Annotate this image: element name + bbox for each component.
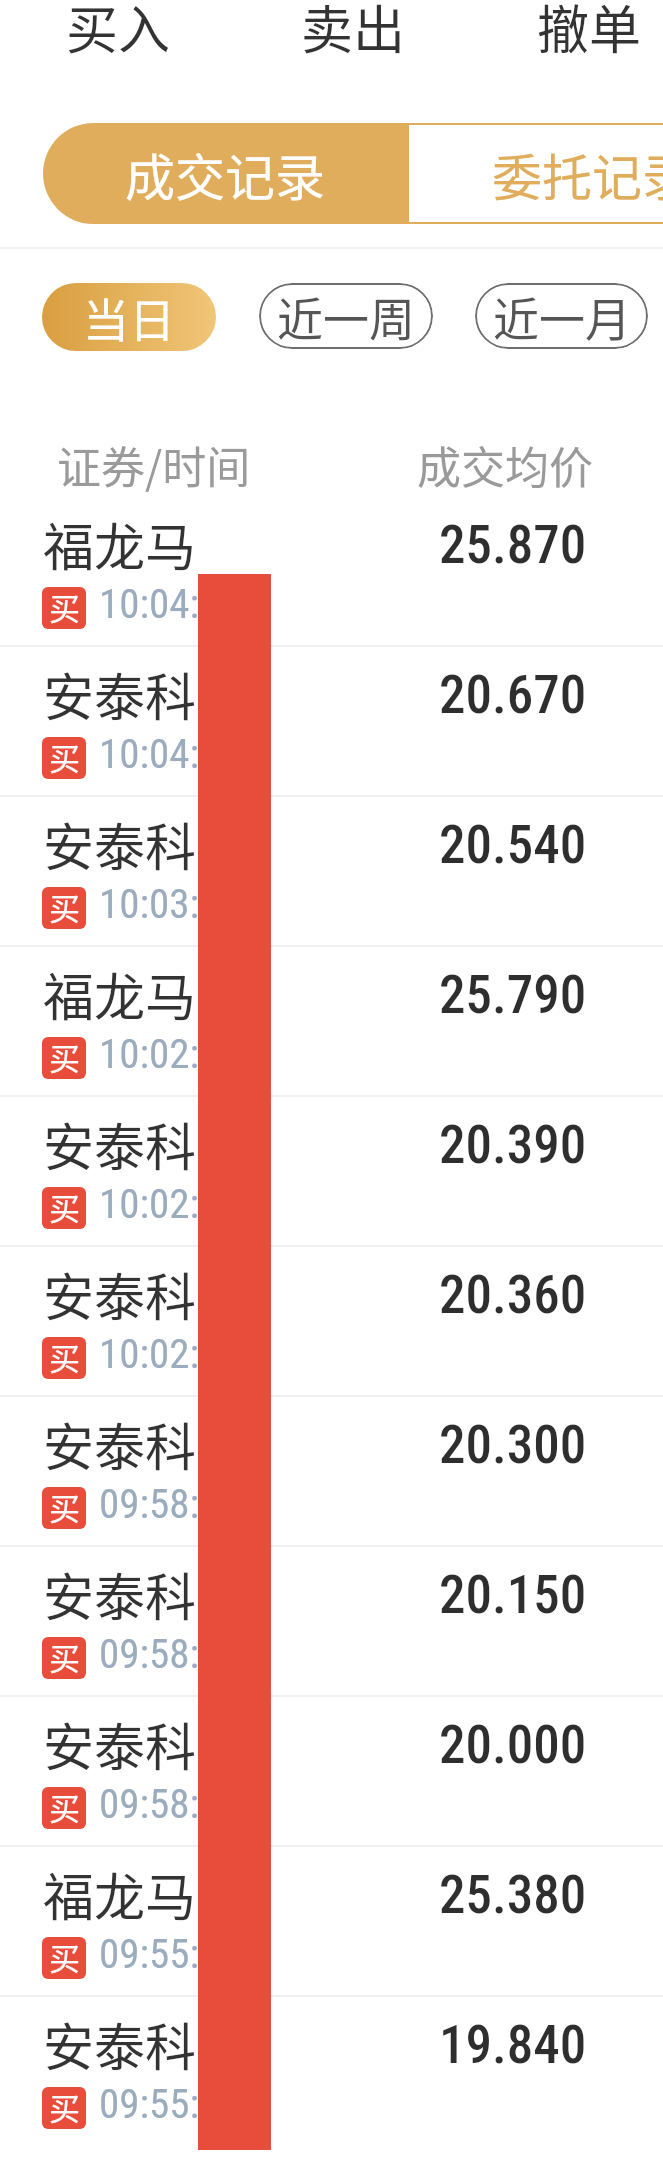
button[interactable]: 卖出 [235, 0, 471, 59]
button[interactable]: 福龙马 [0, 947, 663, 1097]
staticText: 买入 [66, 0, 171, 59]
staticText: 20.300 [439, 1414, 587, 1472]
staticText: 委托记录 [492, 138, 663, 210]
staticText: 09:58:2 [99, 1630, 220, 1678]
staticText: 近一周 [277, 283, 415, 349]
staticText: 安泰科技 [43, 807, 248, 877]
staticText: 买 [49, 1787, 80, 1826]
staticText: 20.670 [439, 664, 587, 722]
staticText: 10:04:1 [99, 730, 220, 778]
button[interactable]: 安泰科技 [0, 1397, 663, 1547]
staticText: 当日 [83, 284, 175, 351]
button[interactable]: 安泰科技 [0, 1097, 663, 1247]
button[interactable]: 近一周 [259, 283, 433, 349]
staticText: 20.150 [439, 1564, 587, 1622]
staticText: 09:55:5 [99, 1930, 220, 1978]
staticText: 20.000 [439, 1714, 587, 1772]
button[interactable]: 买入 [0, 0, 236, 59]
staticText: 10:03:5 [99, 880, 220, 928]
staticText: 安泰科技 [43, 1557, 248, 1627]
staticText: 福龙马 [43, 1857, 197, 1927]
staticText: 买 [49, 587, 80, 626]
staticText: 成交均价 [417, 433, 593, 493]
staticText: 10:02:0 [99, 1330, 220, 1378]
button[interactable]: 安泰科技 [0, 1697, 663, 1847]
staticText: 09:55:2 [99, 2080, 220, 2128]
staticText: 买 [49, 1937, 80, 1976]
button[interactable]: 撤单 [471, 0, 663, 59]
staticText: 25.380 [439, 1864, 587, 1922]
staticText: 安泰科技 [43, 1407, 248, 1477]
staticText: 买 [49, 1037, 80, 1076]
staticText: 买 [49, 887, 80, 926]
staticText: 卖出 [301, 0, 406, 59]
staticText: 证券/时间 [57, 433, 251, 493]
staticText: 25.790 [439, 964, 587, 1022]
staticText: 近一月 [493, 283, 631, 349]
staticText: 买 [49, 1637, 80, 1676]
staticText: 安泰科技 [43, 1707, 248, 1777]
button[interactable]: 安泰科技 [0, 797, 663, 947]
button[interactable]: 近一月 [475, 283, 648, 349]
button[interactable]: 委托记录 [407, 123, 663, 224]
button[interactable]: 成交记录 [43, 123, 407, 224]
staticText: 福龙马 [43, 507, 197, 577]
staticText: 买 [49, 1487, 80, 1526]
staticText: 安泰科技 [43, 657, 248, 727]
staticText: 10:04:4 [99, 580, 220, 628]
staticText: 20.390 [439, 1114, 587, 1172]
staticText: 安泰科技 [43, 2007, 248, 2077]
staticText: 20.360 [439, 1264, 587, 1322]
button[interactable]: 福龙马 [0, 497, 663, 647]
button[interactable]: 安泰科技 [0, 1997, 663, 2147]
staticText: 09:58:4 [99, 1480, 220, 1528]
staticText: 买 [49, 737, 80, 776]
button[interactable]: 安泰科技 [0, 1247, 663, 1397]
staticText: 买 [49, 2087, 80, 2126]
staticText: 福龙马 [43, 957, 197, 1027]
staticText: 10:02:2 [99, 1180, 220, 1228]
staticText: 成交记录 [125, 138, 325, 210]
staticText: 买 [49, 1337, 80, 1376]
staticText: 10:02:3 [99, 1030, 220, 1078]
staticText: 买 [49, 1187, 80, 1226]
staticText: 20.540 [439, 814, 587, 872]
button[interactable]: 福龙马 [0, 1847, 663, 1997]
staticText: 安泰科技 [43, 1107, 248, 1177]
staticText: 撤单 [537, 0, 642, 59]
staticText: 25.870 [439, 514, 587, 572]
staticText: 19.840 [439, 2014, 587, 2072]
button[interactable]: 安泰科技 [0, 1547, 663, 1697]
button[interactable]: 当日 [42, 283, 216, 351]
staticText: 09:58:1 [99, 1780, 220, 1828]
button[interactable]: 安泰科技 [0, 647, 663, 797]
staticText: 安泰科技 [43, 1257, 248, 1327]
